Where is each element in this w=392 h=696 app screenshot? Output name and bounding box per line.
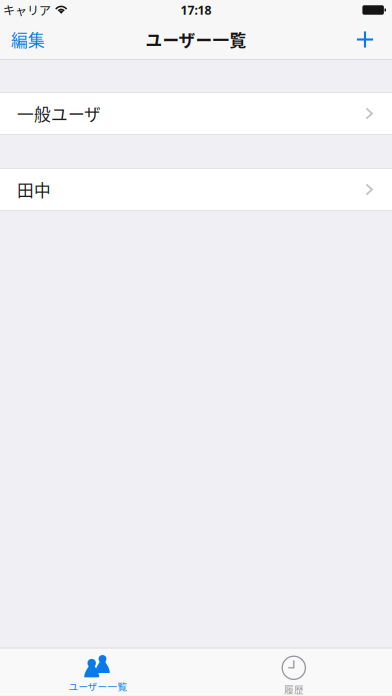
staticText: キャリア <box>3 1 51 19</box>
staticText: ユーザー一覧 <box>68 679 127 693</box>
staticText: 17:18 <box>180 2 211 18</box>
staticText: 一般ユーザ <box>17 101 101 125</box>
staticText: 田中 <box>17 177 51 201</box>
button[interactable]: 追加 <box>343 20 392 59</box>
staticText: 履歴 <box>284 682 304 696</box>
button[interactable]: ユーザー一覧 <box>0 648 196 696</box>
button[interactable]: 履歴 <box>196 648 392 696</box>
button[interactable]: 一般ユーザ <box>0 92 392 135</box>
button[interactable]: 田中 <box>0 168 392 211</box>
staticText: 編集 <box>11 27 45 51</box>
button[interactable]: 編集 <box>0 20 57 59</box>
staticText: ユーザー一覧 <box>145 27 246 51</box>
